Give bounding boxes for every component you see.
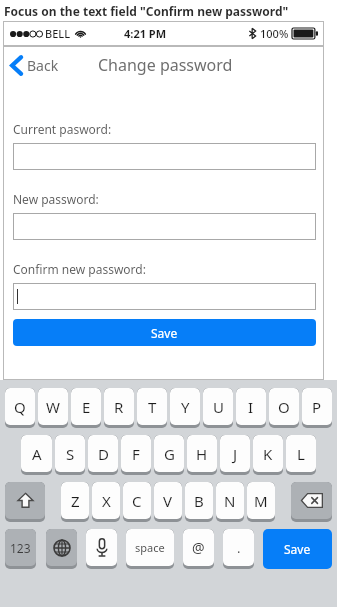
staticText: S [66,444,75,464]
staticText: Focus on the text field "Confirm new pas… [4,3,289,19]
staticText: W [46,397,60,417]
staticText: Y [181,397,190,417]
staticText: A [32,444,42,464]
button[interactable]: J [220,435,250,475]
button[interactable]: L [286,435,316,475]
staticText: Change password [98,54,233,76]
button[interactable]: H [187,435,217,475]
button[interactable]: Y [170,388,200,428]
staticText: F [132,444,140,464]
button[interactable]: X [92,482,120,522]
button[interactable]: E [71,388,101,428]
staticText: C [132,491,142,511]
button[interactable]: Backspace [291,482,332,522]
staticText: R [114,397,124,417]
staticText: Save [151,325,178,341]
button[interactable]: G [154,435,184,475]
staticText: V [163,491,173,511]
staticText: Current pasword: [13,121,112,137]
button[interactable]: Q [5,388,35,428]
button[interactable]: Save [263,529,332,569]
staticText: K [263,444,273,464]
staticText: BELL [45,26,71,41]
button[interactable]: C [123,482,151,522]
button[interactable] [13,143,316,170]
button[interactable]: Dictate [86,529,117,569]
button[interactable]: O [269,388,299,428]
staticText: J [233,444,238,464]
staticText: D [98,444,109,464]
button[interactable] [13,283,316,310]
staticText: 100% [260,26,289,41]
button[interactable]: U [203,388,233,428]
staticText: Q [14,397,26,417]
staticText: M [254,491,268,511]
button[interactable]: Back [3,52,69,79]
button[interactable]: F [121,435,151,475]
staticText: @ [192,538,205,557]
button[interactable]: N [216,482,244,522]
staticText: . [237,539,241,557]
button[interactable]: T [137,388,167,428]
staticText: U [213,397,224,417]
button[interactable]: I [236,388,266,428]
staticText: O [278,397,290,417]
staticText: P [312,397,322,417]
staticText: 123 [10,540,31,556]
button[interactable]: S [55,435,85,475]
staticText: New password: [13,191,99,207]
button[interactable]: Save [13,319,316,346]
staticText: Save [284,541,311,557]
button[interactable]: B [185,482,213,522]
staticText: Confirm new password: [13,261,146,277]
button[interactable] [13,213,316,240]
button[interactable]: space [126,529,174,569]
staticText: G [164,444,175,464]
button[interactable]: . [223,529,254,569]
staticText: I [248,397,254,417]
staticText: T [148,397,157,417]
button[interactable]: D [88,435,118,475]
button[interactable]: W [38,388,68,428]
staticText: X [102,491,111,511]
staticText: 4:21 PM [124,26,167,41]
button[interactable]: A [21,435,52,475]
button[interactable]: V [154,482,182,522]
staticText: B [194,491,204,511]
staticText: space [135,540,165,555]
staticText: Z [71,491,80,511]
staticText: Back [27,56,59,75]
button[interactable]: @ [183,529,214,569]
staticText: L [297,444,305,464]
button[interactable]: Change keyboard [46,529,77,569]
staticText: E [82,397,91,417]
button[interactable]: Z [61,482,89,522]
staticText: H [196,444,208,464]
button[interactable]: P [302,388,332,428]
button[interactable]: Numbers [5,529,36,569]
button[interactable]: K [253,435,283,475]
button[interactable]: Shift [5,482,45,522]
button[interactable]: M [247,482,275,522]
button[interactable]: R [104,388,134,428]
staticText: N [224,491,236,511]
